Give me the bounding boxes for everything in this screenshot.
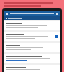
- button[interactable]: Navigate up: [4, 11, 60, 16]
- button[interactable]: [4, 21, 60, 30]
- button[interactable]: [4, 43, 60, 52]
- button[interactable]: Action: [4, 32, 60, 41]
- button[interactable]: [4, 54, 60, 63]
- button[interactable]: Search: [4, 16, 60, 20]
- button[interactable]: [4, 65, 60, 72]
